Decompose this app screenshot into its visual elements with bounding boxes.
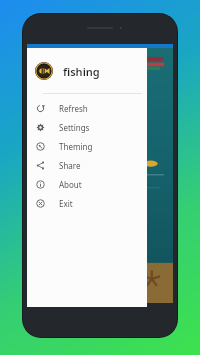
other: Settings <box>36 123 45 132</box>
staticText: Share <box>59 160 81 171</box>
staticText: Theming <box>59 141 93 152</box>
staticText: Refresh <box>59 103 88 114</box>
staticText: Settings <box>59 122 90 133</box>
other: fishing app icon <box>35 62 53 80</box>
staticText: fishing <box>63 64 100 79</box>
button[interactable]: Share <box>27 156 147 175</box>
button[interactable]: About <box>27 175 147 194</box>
other: Share <box>36 161 45 170</box>
button[interactable]: Theming <box>27 137 147 156</box>
other: About <box>36 180 45 189</box>
staticText: About <box>59 179 82 190</box>
button[interactable]: Settings <box>27 118 147 137</box>
button[interactable]: Exit <box>27 194 147 213</box>
other: Exit <box>36 199 45 208</box>
staticText: Exit <box>59 198 73 209</box>
button[interactable]: Refresh <box>27 99 147 118</box>
button[interactable]: fishing app icon <box>27 56 147 86</box>
other: Theming <box>36 142 45 151</box>
other: Refresh <box>36 104 45 113</box>
